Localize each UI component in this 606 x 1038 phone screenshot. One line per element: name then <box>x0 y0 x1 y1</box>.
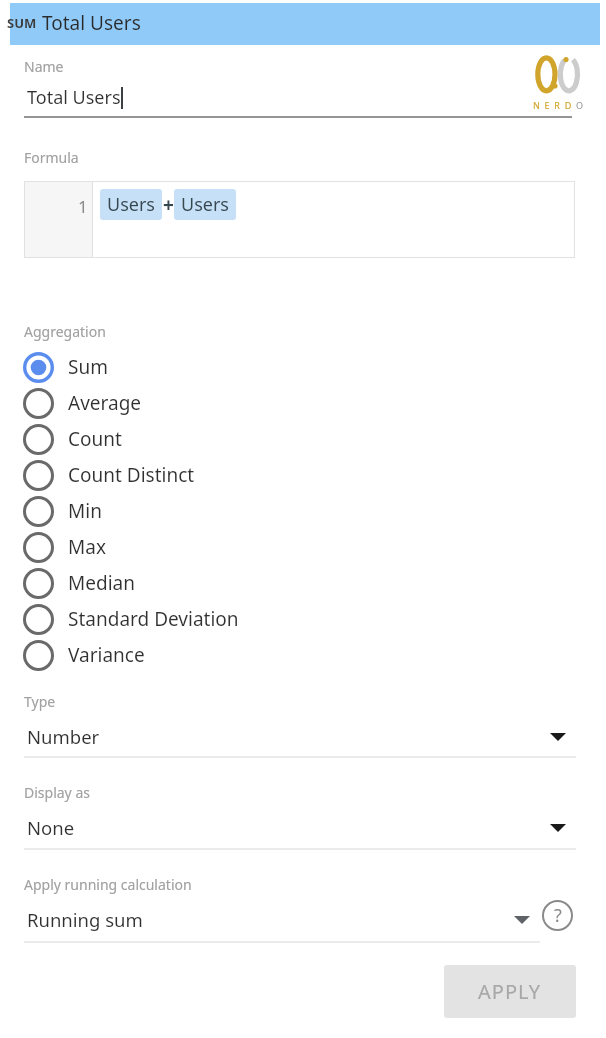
button[interactable]: Users <box>100 189 162 220</box>
staticText: Median <box>68 570 135 596</box>
staticText: O <box>576 99 584 111</box>
staticText: Running sum <box>27 907 143 932</box>
button[interactable]: Sum <box>23 349 423 385</box>
staticText: Formula <box>24 148 79 167</box>
staticText: Standard Deviation <box>68 606 239 632</box>
staticText: SUM <box>7 14 37 32</box>
button[interactable]: Count Distinct <box>23 457 423 493</box>
staticText: Count <box>68 426 122 452</box>
staticText: Display as <box>24 783 90 802</box>
staticText: Users <box>107 192 155 217</box>
staticText: ? <box>554 903 562 928</box>
button[interactable]: SUM <box>10 3 600 45</box>
button[interactable]: Standard Deviation <box>23 601 423 637</box>
button[interactable]: Users <box>174 189 236 220</box>
button[interactable]: APPLY <box>444 965 576 1018</box>
staticText: Type <box>24 692 56 711</box>
staticText: Variance <box>68 642 145 668</box>
button[interactable]: Name <box>24 52 572 118</box>
staticText: Apply running calculation <box>24 875 192 894</box>
staticText: N E R D <box>533 99 576 111</box>
staticText: Number <box>27 724 100 749</box>
staticText: 1 <box>78 195 88 218</box>
staticText: None <box>27 815 75 840</box>
staticText: + <box>163 192 174 218</box>
button[interactable]: Median <box>23 565 423 601</box>
other: Nerdo logo <box>533 54 585 110</box>
staticText: Users <box>181 192 229 217</box>
staticText: APPLY <box>478 978 542 1005</box>
button[interactable]: Type <box>24 687 576 758</box>
staticText: Name <box>24 57 64 76</box>
button[interactable]: Apply running calculation <box>24 870 540 943</box>
staticText: Count Distinct <box>68 462 195 488</box>
staticText: Max <box>68 534 106 560</box>
button[interactable]: Display as <box>24 778 576 850</box>
staticText: Min <box>68 498 102 524</box>
button[interactable]: Average <box>23 385 423 421</box>
staticText: Total Users <box>42 10 141 36</box>
staticText: Total Users <box>27 85 121 110</box>
button[interactable]: Count <box>23 421 423 457</box>
staticText: Aggregation <box>24 322 106 341</box>
button[interactable]: Min <box>23 493 423 529</box>
staticText: Average <box>68 390 142 416</box>
button[interactable]: 1 <box>25 182 574 257</box>
button[interactable]: Help <box>541 899 574 932</box>
button[interactable]: Variance <box>23 637 423 673</box>
button[interactable]: Max <box>23 529 423 565</box>
staticText: Sum <box>68 354 108 380</box>
